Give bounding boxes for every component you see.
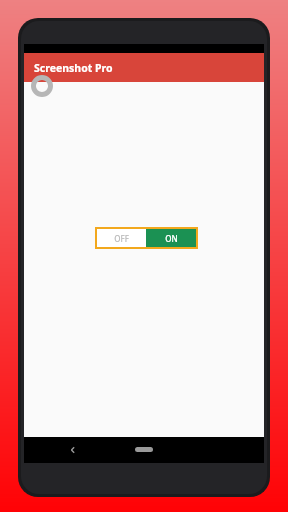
staticText: OFF [114,233,129,244]
button[interactable]: ON [146,229,196,247]
button[interactable]: Back [68,445,78,455]
button[interactable]: OFF [97,229,146,247]
staticText: Screenshot Pro [34,61,113,75]
button[interactable]: Home [135,447,153,452]
other: Loading [30,74,54,98]
staticText: ON [165,233,178,244]
